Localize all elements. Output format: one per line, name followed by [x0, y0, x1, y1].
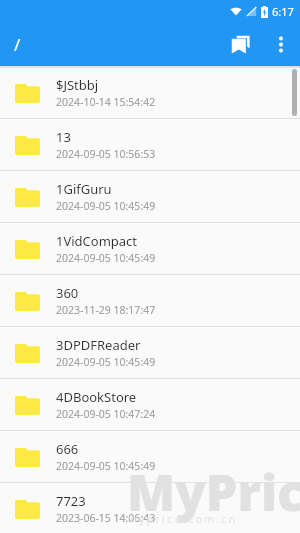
staticText: 13	[56, 128, 71, 146]
staticText: 2024-09-05 10:45:49	[56, 459, 156, 473]
button[interactable]: Bookmarks	[218, 22, 262, 66]
button[interactable]: 3DPDFReader	[0, 327, 300, 379]
button[interactable]: More options	[262, 22, 300, 66]
staticText: /	[14, 33, 21, 56]
button[interactable]: 360	[0, 275, 300, 327]
staticText: 1VidCompact	[56, 232, 138, 250]
staticText: 3DPDFReader	[56, 336, 141, 354]
button[interactable]: 1GifGuru	[0, 171, 300, 223]
staticText: 2023-11-29 18:17:47	[56, 303, 156, 317]
staticText: 2024-09-05 10:56:53	[56, 147, 156, 161]
staticText: 360	[56, 284, 79, 302]
button[interactable]: 7723	[0, 483, 300, 533]
staticText: 1GifGuru	[56, 180, 112, 198]
button[interactable]: 4DBookStore	[0, 379, 300, 431]
staticText: 2024-10-14 15:54:42	[56, 95, 156, 109]
button[interactable]: 1VidCompact	[0, 223, 300, 275]
staticText: 666	[56, 440, 79, 458]
staticText: 6:17	[272, 4, 294, 19]
staticText: 2024-09-05 10:47:24	[56, 407, 156, 421]
staticText: MyPrice	[127, 458, 300, 526]
button[interactable]: 13	[0, 119, 300, 171]
staticText: 2024-09-05 10:45:49	[56, 251, 156, 265]
button[interactable]: $JStbbj	[0, 67, 300, 119]
staticText: m y p r i c e . c o m . c n	[127, 512, 236, 526]
staticText: 2024-09-05 10:45:49	[56, 199, 156, 213]
button[interactable]: 666	[0, 431, 300, 483]
staticText: $JStbbj	[56, 76, 99, 94]
staticText: 2024-09-05 10:45:49	[56, 355, 156, 369]
staticText: 4DBookStore	[56, 388, 137, 406]
staticText: 2023-06-15 14:06:43	[56, 511, 156, 525]
staticText: 7723	[56, 492, 86, 510]
